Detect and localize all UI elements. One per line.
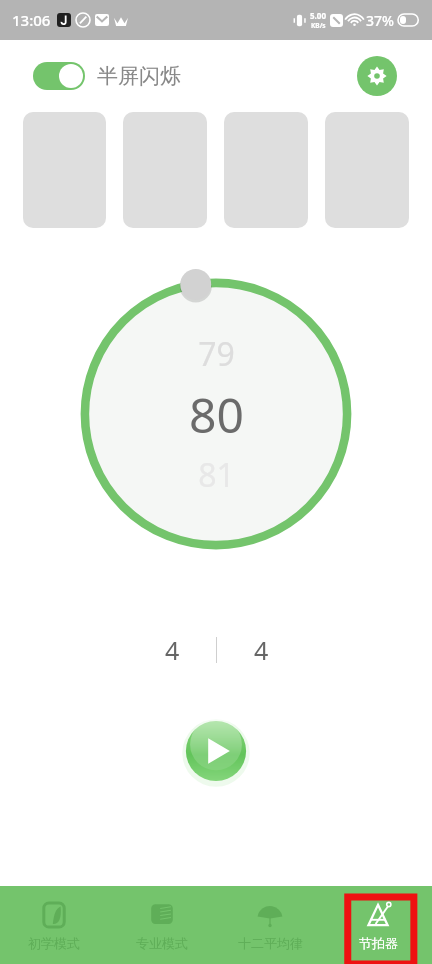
button[interactable]: Beat 3: [224, 112, 308, 228]
staticText: 5.00: [310, 10, 326, 21]
staticText: 80: [189, 382, 244, 447]
staticText: 4: [165, 633, 180, 667]
button[interactable]: 节拍器: [324, 886, 432, 964]
button[interactable]: 十二平均律: [216, 886, 324, 964]
staticText: 79: [198, 332, 235, 376]
staticText: KB/s: [311, 21, 326, 30]
button[interactable]: BPM dial: [78, 276, 354, 552]
staticText: 81: [198, 453, 235, 497]
staticText: 半屏闪烁: [97, 63, 181, 89]
button[interactable]: 4: [235, 630, 287, 670]
staticText: 专业模式: [136, 935, 188, 951]
button[interactable]: Beat 4: [325, 112, 409, 228]
staticText: 4: [254, 633, 269, 667]
staticText: 37%: [366, 11, 394, 30]
button[interactable]: 4: [146, 630, 198, 670]
button[interactable]: 初学模式: [0, 886, 108, 964]
staticText: 初学模式: [28, 935, 80, 951]
button[interactable]: 专业模式: [108, 886, 216, 964]
button[interactable]: Settings: [357, 56, 397, 96]
button[interactable]: Beat 1: [23, 112, 106, 228]
staticText: 节拍器: [359, 935, 398, 951]
staticText: 13:06: [12, 10, 51, 30]
button[interactable]: Play: [181, 716, 251, 786]
staticText: 十二平均律: [238, 935, 303, 951]
button[interactable]: 半屏闪烁 开关: [33, 62, 85, 90]
button[interactable]: Beat 2: [123, 112, 207, 228]
